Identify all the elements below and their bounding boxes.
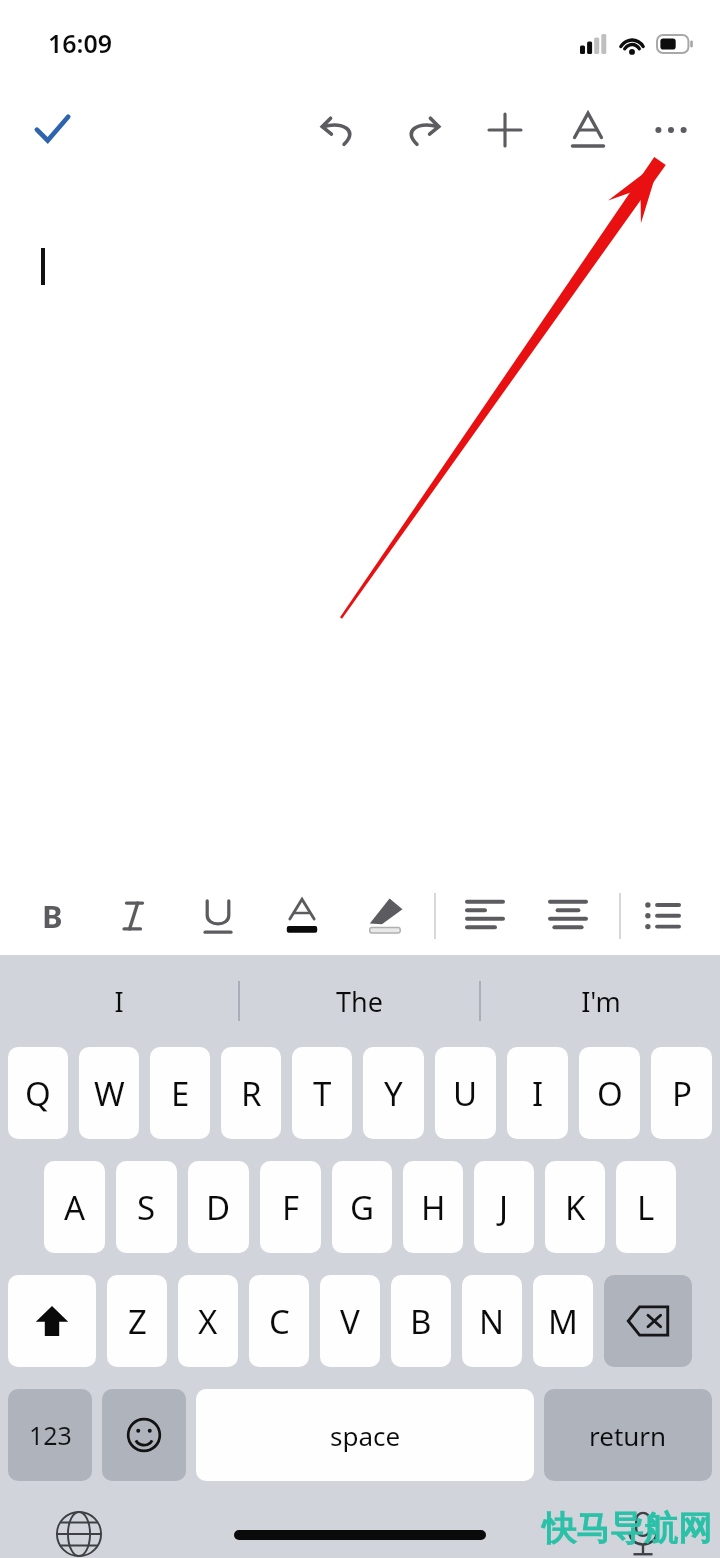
staticText: M	[548, 1299, 578, 1344]
button[interactable]: Backspace	[604, 1275, 692, 1367]
button[interactable]: Z	[107, 1275, 167, 1367]
button[interactable]: E	[150, 1047, 210, 1139]
staticText: I	[532, 1071, 544, 1116]
button[interactable]: P	[651, 1047, 712, 1139]
staticText: A	[64, 1185, 86, 1230]
staticText: C	[269, 1299, 290, 1344]
button[interactable]: C	[249, 1275, 309, 1367]
staticText: I	[114, 983, 124, 1020]
staticText: O	[597, 1071, 623, 1116]
button[interactable]: B	[391, 1275, 451, 1367]
staticText: N	[479, 1299, 505, 1344]
button[interactable]: X	[178, 1275, 238, 1367]
button[interactable]: D	[188, 1161, 249, 1253]
button[interactable]: M	[533, 1275, 593, 1367]
staticText: V	[340, 1299, 360, 1344]
staticText: U	[453, 1071, 478, 1116]
button[interactable]: Bold	[18, 882, 86, 950]
staticText: B	[410, 1299, 432, 1344]
button[interactable]: I'm	[481, 955, 720, 1047]
button[interactable]: Redo	[380, 88, 463, 171]
staticText: L	[637, 1185, 655, 1230]
staticText: H	[421, 1185, 446, 1230]
staticText: I'm	[581, 983, 621, 1020]
button[interactable]: Done	[18, 95, 86, 163]
staticText: T	[313, 1071, 332, 1116]
staticText: 快马导航网	[542, 1507, 712, 1550]
staticText: return	[589, 1418, 667, 1453]
button[interactable]: G	[332, 1161, 392, 1253]
button[interactable]: Align center	[534, 882, 602, 950]
staticText: space	[330, 1418, 401, 1453]
button[interactable]: Undo	[297, 88, 380, 171]
staticText: D	[206, 1185, 231, 1230]
button[interactable]: I	[507, 1047, 568, 1139]
staticText: W	[94, 1071, 125, 1116]
button[interactable]: U	[435, 1047, 496, 1139]
button[interactable]: Text color	[268, 882, 336, 950]
button[interactable]: Underline	[184, 882, 252, 950]
staticText: R	[241, 1071, 262, 1116]
button[interactable]: 123	[8, 1389, 92, 1481]
button[interactable]: T	[292, 1047, 352, 1139]
button[interactable]: S	[116, 1161, 177, 1253]
staticText: X	[198, 1299, 218, 1344]
button[interactable]: Highlight	[351, 882, 419, 950]
button[interactable]: return	[544, 1389, 712, 1481]
button[interactable]: I	[0, 955, 238, 1047]
staticText: K	[565, 1185, 586, 1230]
button[interactable]: space	[196, 1389, 534, 1481]
button[interactable]: R	[221, 1047, 281, 1139]
button[interactable]: Dictation	[608, 1499, 678, 1558]
button[interactable]: W	[79, 1047, 139, 1139]
button[interactable]: Insert	[463, 88, 546, 171]
staticText: Y	[384, 1071, 403, 1116]
staticText: Q	[25, 1071, 51, 1116]
button[interactable]: Q	[8, 1047, 68, 1139]
button[interactable]: Bullet list	[629, 882, 697, 950]
staticText: 123	[29, 1418, 72, 1452]
button[interactable]: More options	[629, 88, 712, 171]
button[interactable]: Change keyboard	[44, 1499, 114, 1558]
staticText: P	[672, 1071, 692, 1116]
button[interactable]: A	[44, 1161, 105, 1253]
staticText: G	[350, 1185, 375, 1230]
button[interactable]: H	[403, 1161, 463, 1253]
staticText: B	[42, 895, 63, 937]
button[interactable]: Emoji	[102, 1389, 186, 1481]
button[interactable]: K	[545, 1161, 605, 1253]
button[interactable]: Italic	[101, 882, 169, 950]
button[interactable]: Shift	[8, 1275, 96, 1367]
button[interactable]: The	[240, 955, 479, 1047]
button[interactable]: Align left	[451, 882, 519, 950]
button[interactable]: L	[616, 1161, 676, 1253]
button[interactable]: Y	[363, 1047, 424, 1139]
staticText: The	[336, 983, 383, 1020]
staticText: S	[137, 1185, 156, 1230]
button[interactable]: V	[320, 1275, 380, 1367]
staticText: J	[499, 1185, 509, 1230]
staticText: 16:09	[48, 26, 113, 60]
button[interactable]: F	[260, 1161, 321, 1253]
button[interactable]: N	[462, 1275, 522, 1367]
button[interactable]: O	[579, 1047, 640, 1139]
staticText: F	[282, 1185, 300, 1230]
button[interactable]: J	[474, 1161, 534, 1253]
staticText: E	[171, 1071, 190, 1116]
button[interactable]: Text format	[546, 88, 629, 171]
staticText: Z	[128, 1299, 147, 1344]
